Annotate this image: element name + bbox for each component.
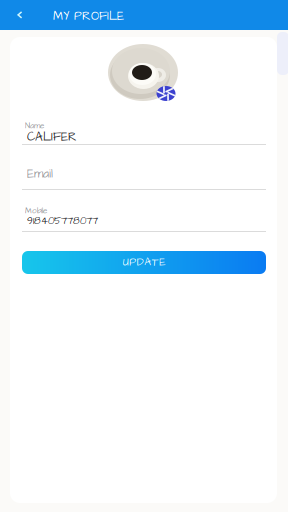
staticText: Mobile	[25, 205, 47, 216]
button[interactable]: Back	[5, 0, 35, 30]
staticText: MY PROFILE	[53, 8, 124, 25]
staticText: 918405778077	[27, 214, 98, 228]
staticText: Name	[25, 120, 44, 131]
staticText: CALIFER	[27, 129, 77, 145]
staticText: Email	[27, 166, 53, 182]
button[interactable]: UPDATE	[22, 251, 266, 274]
staticText: UPDATE	[123, 255, 165, 270]
